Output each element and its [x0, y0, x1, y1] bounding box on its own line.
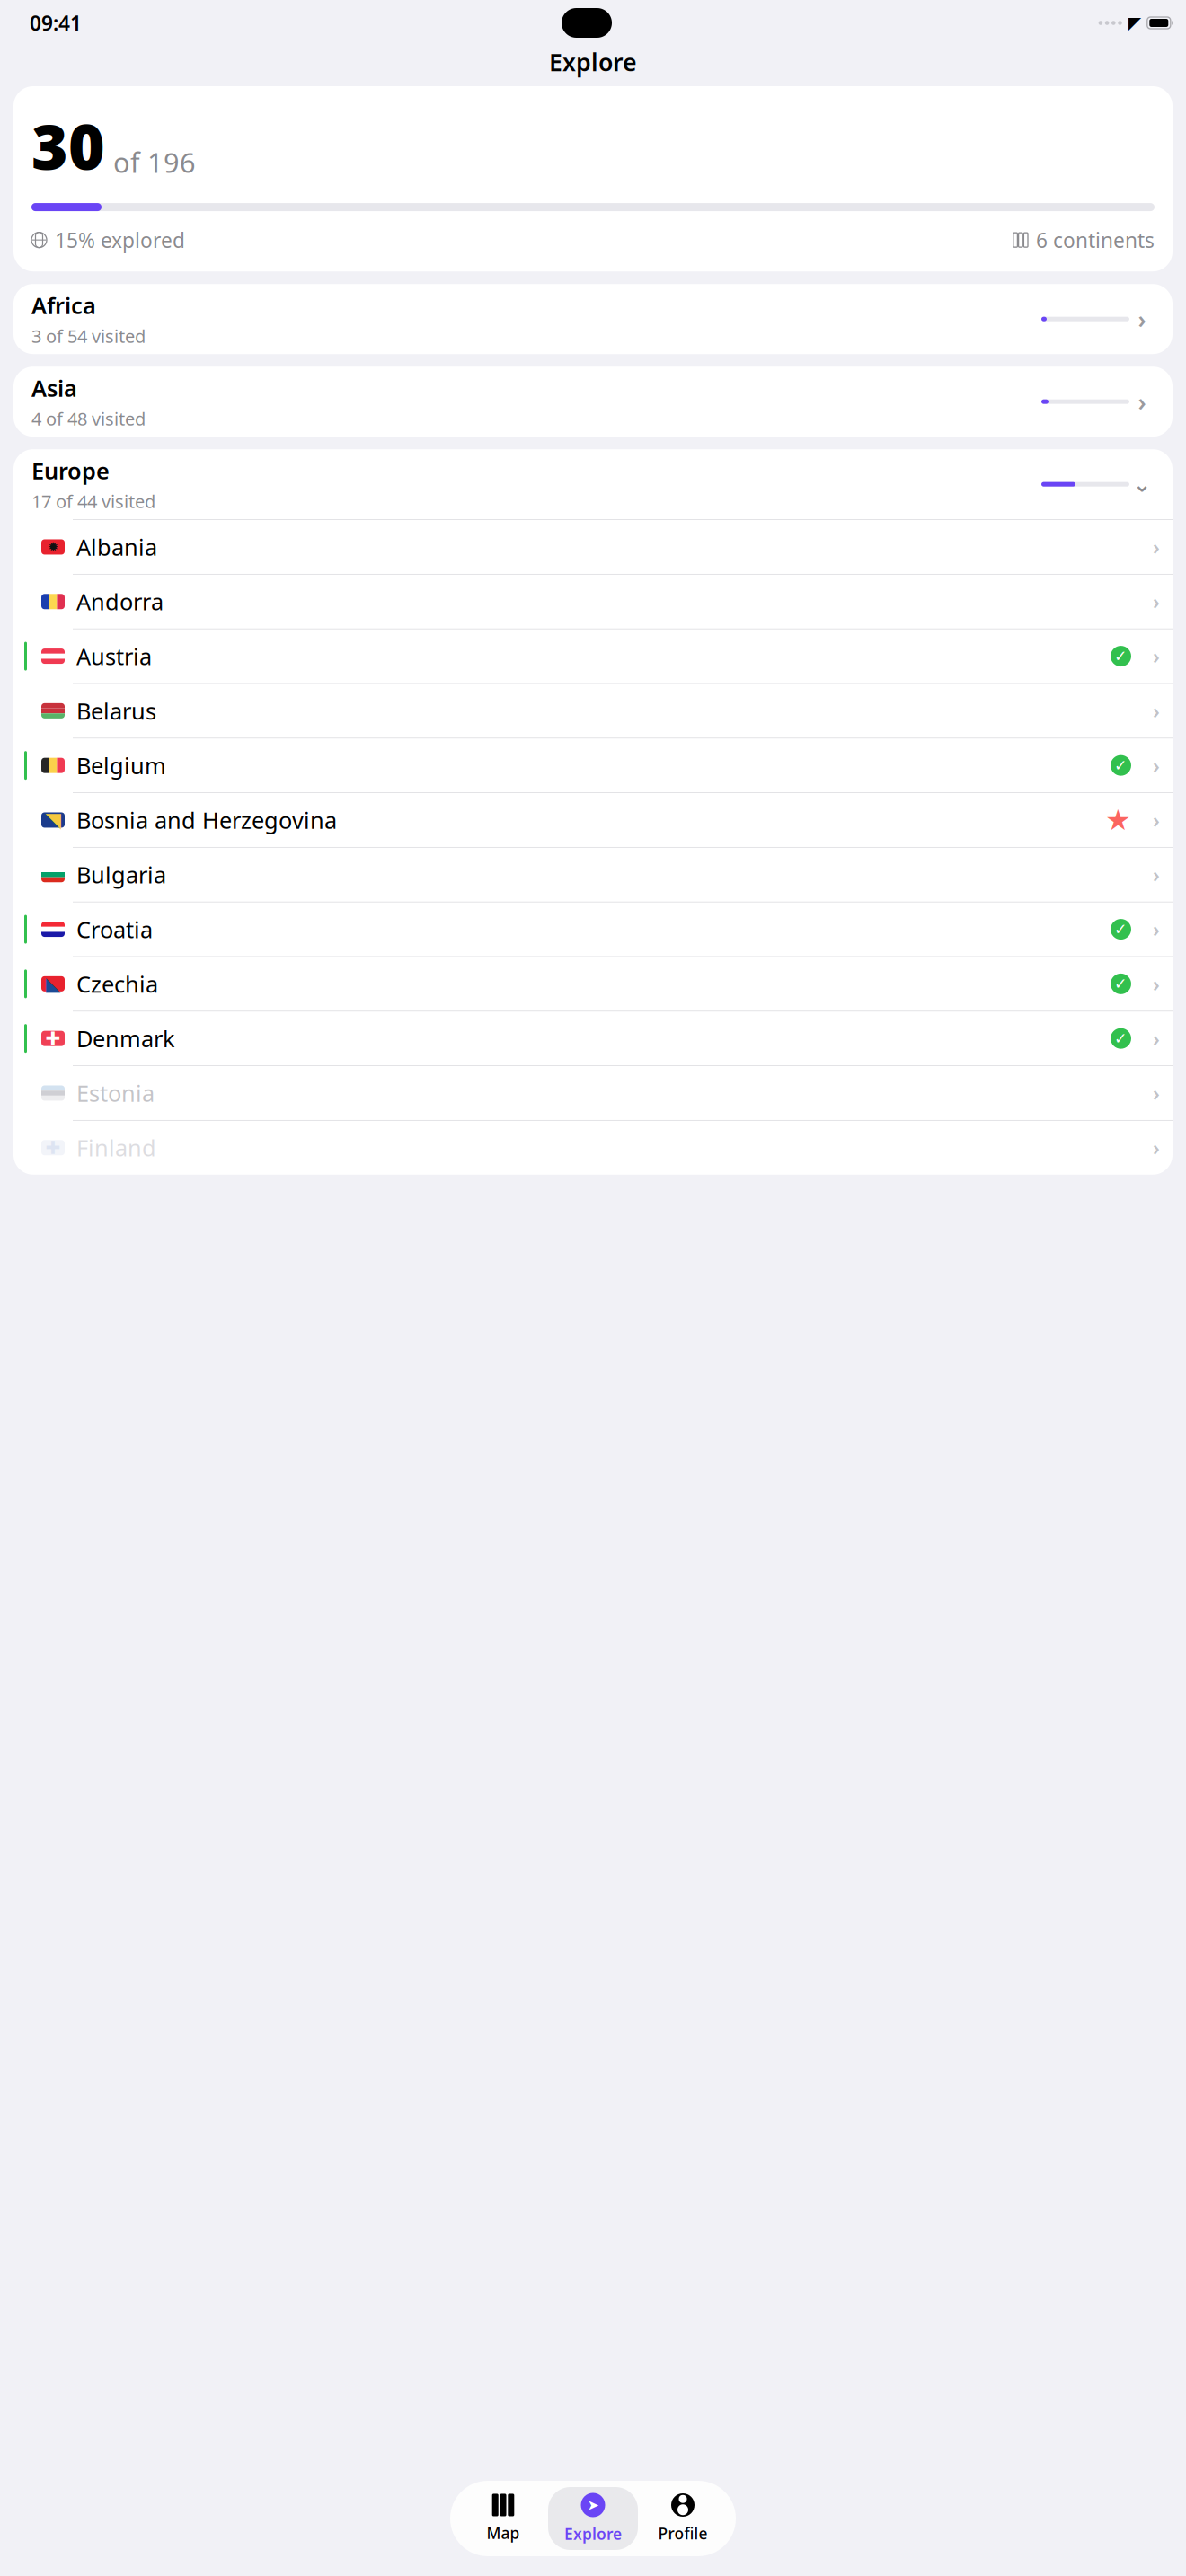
staticText: › — [1153, 1025, 1160, 1052]
staticText: ✓ — [1114, 920, 1128, 938]
button[interactable]: Asia — [13, 367, 1173, 437]
staticText: ✓ — [1114, 757, 1128, 774]
staticText: ◤ — [1128, 13, 1141, 32]
staticText: Czechia — [76, 969, 158, 999]
staticText: Belgium — [76, 750, 166, 781]
staticText: › — [1153, 916, 1160, 943]
button[interactable]: Belgium — [13, 738, 1173, 793]
button[interactable]: ◥ — [13, 793, 1173, 848]
button[interactable]: ✚ — [13, 1012, 1173, 1066]
button[interactable]: ✚ — [13, 1121, 1173, 1175]
staticText: ✓ — [1114, 975, 1128, 993]
staticText: Europe — [31, 455, 110, 486]
staticText: ✹ — [48, 539, 58, 554]
staticText: Denmark — [76, 1023, 175, 1054]
staticText: ★ — [1105, 804, 1131, 836]
staticText: Estonia — [76, 1078, 155, 1108]
staticText: 30 — [31, 104, 105, 187]
button[interactable]: Profile — [638, 2487, 728, 2550]
button[interactable]: ➤ — [548, 2487, 638, 2550]
staticText: 15% explored — [55, 226, 185, 253]
staticText: ◥ — [45, 808, 61, 832]
staticText: › — [1153, 861, 1160, 888]
button[interactable]: Croatia — [13, 902, 1173, 957]
staticText: Asia — [31, 373, 77, 403]
staticText: › — [1153, 806, 1160, 834]
staticText: ➤ — [587, 2497, 599, 2513]
staticText: 09:41 — [30, 9, 82, 36]
staticText: Finland — [76, 1133, 156, 1163]
staticText: › — [1138, 386, 1146, 418]
button[interactable]: Estonia — [13, 1066, 1173, 1121]
button[interactable]: Europe — [13, 449, 1173, 519]
staticText: ✓ — [1114, 1030, 1128, 1047]
staticText: Belarus — [76, 696, 156, 726]
staticText: Map — [487, 2523, 520, 2543]
staticText: Bosnia and Herzegovina — [76, 805, 337, 835]
button[interactable]: Andorra — [13, 575, 1173, 629]
staticText: ✚ — [45, 1028, 61, 1049]
staticText: ✚ — [45, 1137, 61, 1158]
staticText: of 196 — [113, 144, 196, 181]
staticText: › — [1153, 697, 1160, 724]
button[interactable]: Austria — [13, 629, 1173, 684]
staticText: › — [1138, 303, 1146, 335]
staticText: › — [1153, 752, 1160, 779]
staticText: Explore — [564, 2523, 622, 2544]
button[interactable]: Belarus — [13, 684, 1173, 738]
staticText: Explore — [549, 46, 637, 78]
button[interactable]: ✹ — [13, 520, 1173, 575]
staticText: Croatia — [76, 914, 153, 944]
staticText: ✓ — [1114, 647, 1128, 665]
staticText: › — [1153, 970, 1160, 997]
staticText: Albania — [76, 532, 157, 562]
staticText: ◣ — [46, 973, 60, 995]
staticText: › — [1153, 643, 1160, 670]
staticText: 4 of 48 visited — [31, 407, 146, 431]
staticText: 3 of 54 visited — [31, 324, 146, 348]
staticText: Austria — [76, 641, 152, 671]
staticText: ⌄ — [1133, 472, 1151, 497]
staticText: Andorra — [76, 587, 164, 617]
staticText: › — [1153, 533, 1160, 560]
button[interactable]: ◣ — [13, 957, 1173, 1012]
staticText: › — [1153, 1080, 1160, 1107]
staticText: 6 continents — [1036, 226, 1155, 253]
staticText: › — [1153, 1134, 1160, 1161]
button[interactable]: Africa — [13, 284, 1173, 354]
staticText: › — [1153, 588, 1160, 615]
button[interactable]: Bulgaria — [13, 848, 1173, 902]
staticText: Profile — [658, 2523, 708, 2544]
button[interactable]: Map — [458, 2487, 548, 2550]
staticText: Africa — [31, 290, 96, 320]
staticText: Bulgaria — [76, 860, 166, 890]
staticText: 17 of 44 visited — [31, 489, 155, 513]
